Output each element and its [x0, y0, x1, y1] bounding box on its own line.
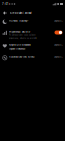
staticText: Zapnuto	[54, 44, 61, 46]
staticText: Zapnuto	[54, 20, 61, 22]
staticText: Připomenutí aktivity	[9, 30, 30, 33]
staticText: Automatický test stresu	[9, 55, 34, 58]
button[interactable]: Připomenutí aktivity	[0, 29, 65, 42]
staticText: Po aktivaci vám vaše zařízení připomene,…	[9, 34, 36, 39]
staticText: HUAWEI TruSleep™	[9, 19, 28, 22]
button[interactable]: Nepřetržité sledování tepové frekvence	[0, 42, 65, 54]
staticText: Zapnuto	[54, 56, 61, 58]
button[interactable]: Back	[2, 9, 8, 16]
button[interactable]: Automatický test stresu	[0, 54, 65, 65]
button[interactable]: HUAWEI TruSleep™	[0, 18, 65, 29]
staticText: Nepřetržité sledování tepové frekvence	[9, 43, 31, 50]
staticText: Sledování zdraví	[10, 11, 32, 15]
staticText: 7:41	[2, 2, 8, 6]
